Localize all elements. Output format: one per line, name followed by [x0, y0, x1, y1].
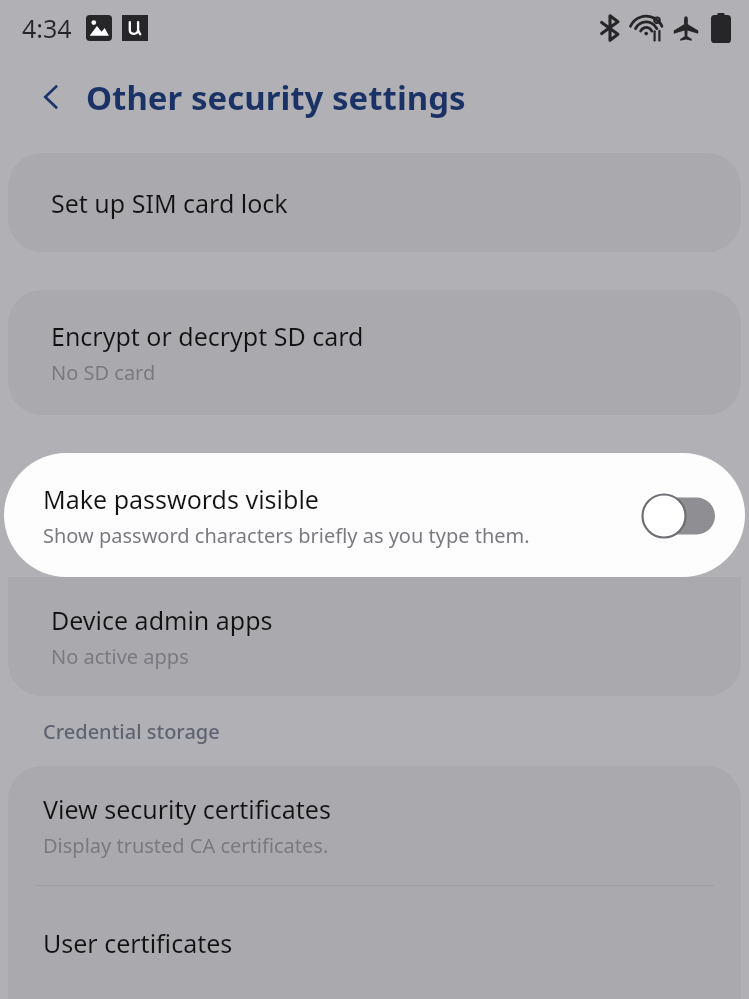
- staticText: Display trusted CA certificates.: [43, 832, 329, 859]
- staticText: Encrypt or decrypt SD card: [51, 319, 364, 353]
- staticText: User certificates: [43, 926, 233, 960]
- staticText: Credential storage: [43, 718, 220, 745]
- button[interactable]: Make passwords visible toggle: [641, 493, 715, 539]
- staticText: Device admin apps: [51, 603, 273, 637]
- staticText: Make passwords visible: [43, 482, 319, 516]
- staticText: 4:34: [22, 11, 72, 45]
- staticText: Set up SIM card lock: [51, 186, 288, 220]
- button[interactable]: Device admin apps: [8, 577, 741, 696]
- staticText: View security certificates: [43, 792, 331, 826]
- button[interactable]: Make passwords visible: [4, 453, 745, 577]
- staticText: No active apps: [51, 643, 189, 670]
- staticText: Show password characters briefly as you …: [43, 522, 530, 549]
- button[interactable]: Set up SIM card lock: [8, 153, 741, 252]
- button[interactable]: Encrypt or decrypt SD card: [8, 290, 741, 415]
- button[interactable]: User certificates: [8, 886, 741, 999]
- button[interactable]: View security certificates: [8, 766, 741, 885]
- button[interactable]: Back: [28, 73, 76, 121]
- staticText: No SD card: [51, 359, 156, 386]
- staticText: Other security settings: [86, 75, 466, 120]
